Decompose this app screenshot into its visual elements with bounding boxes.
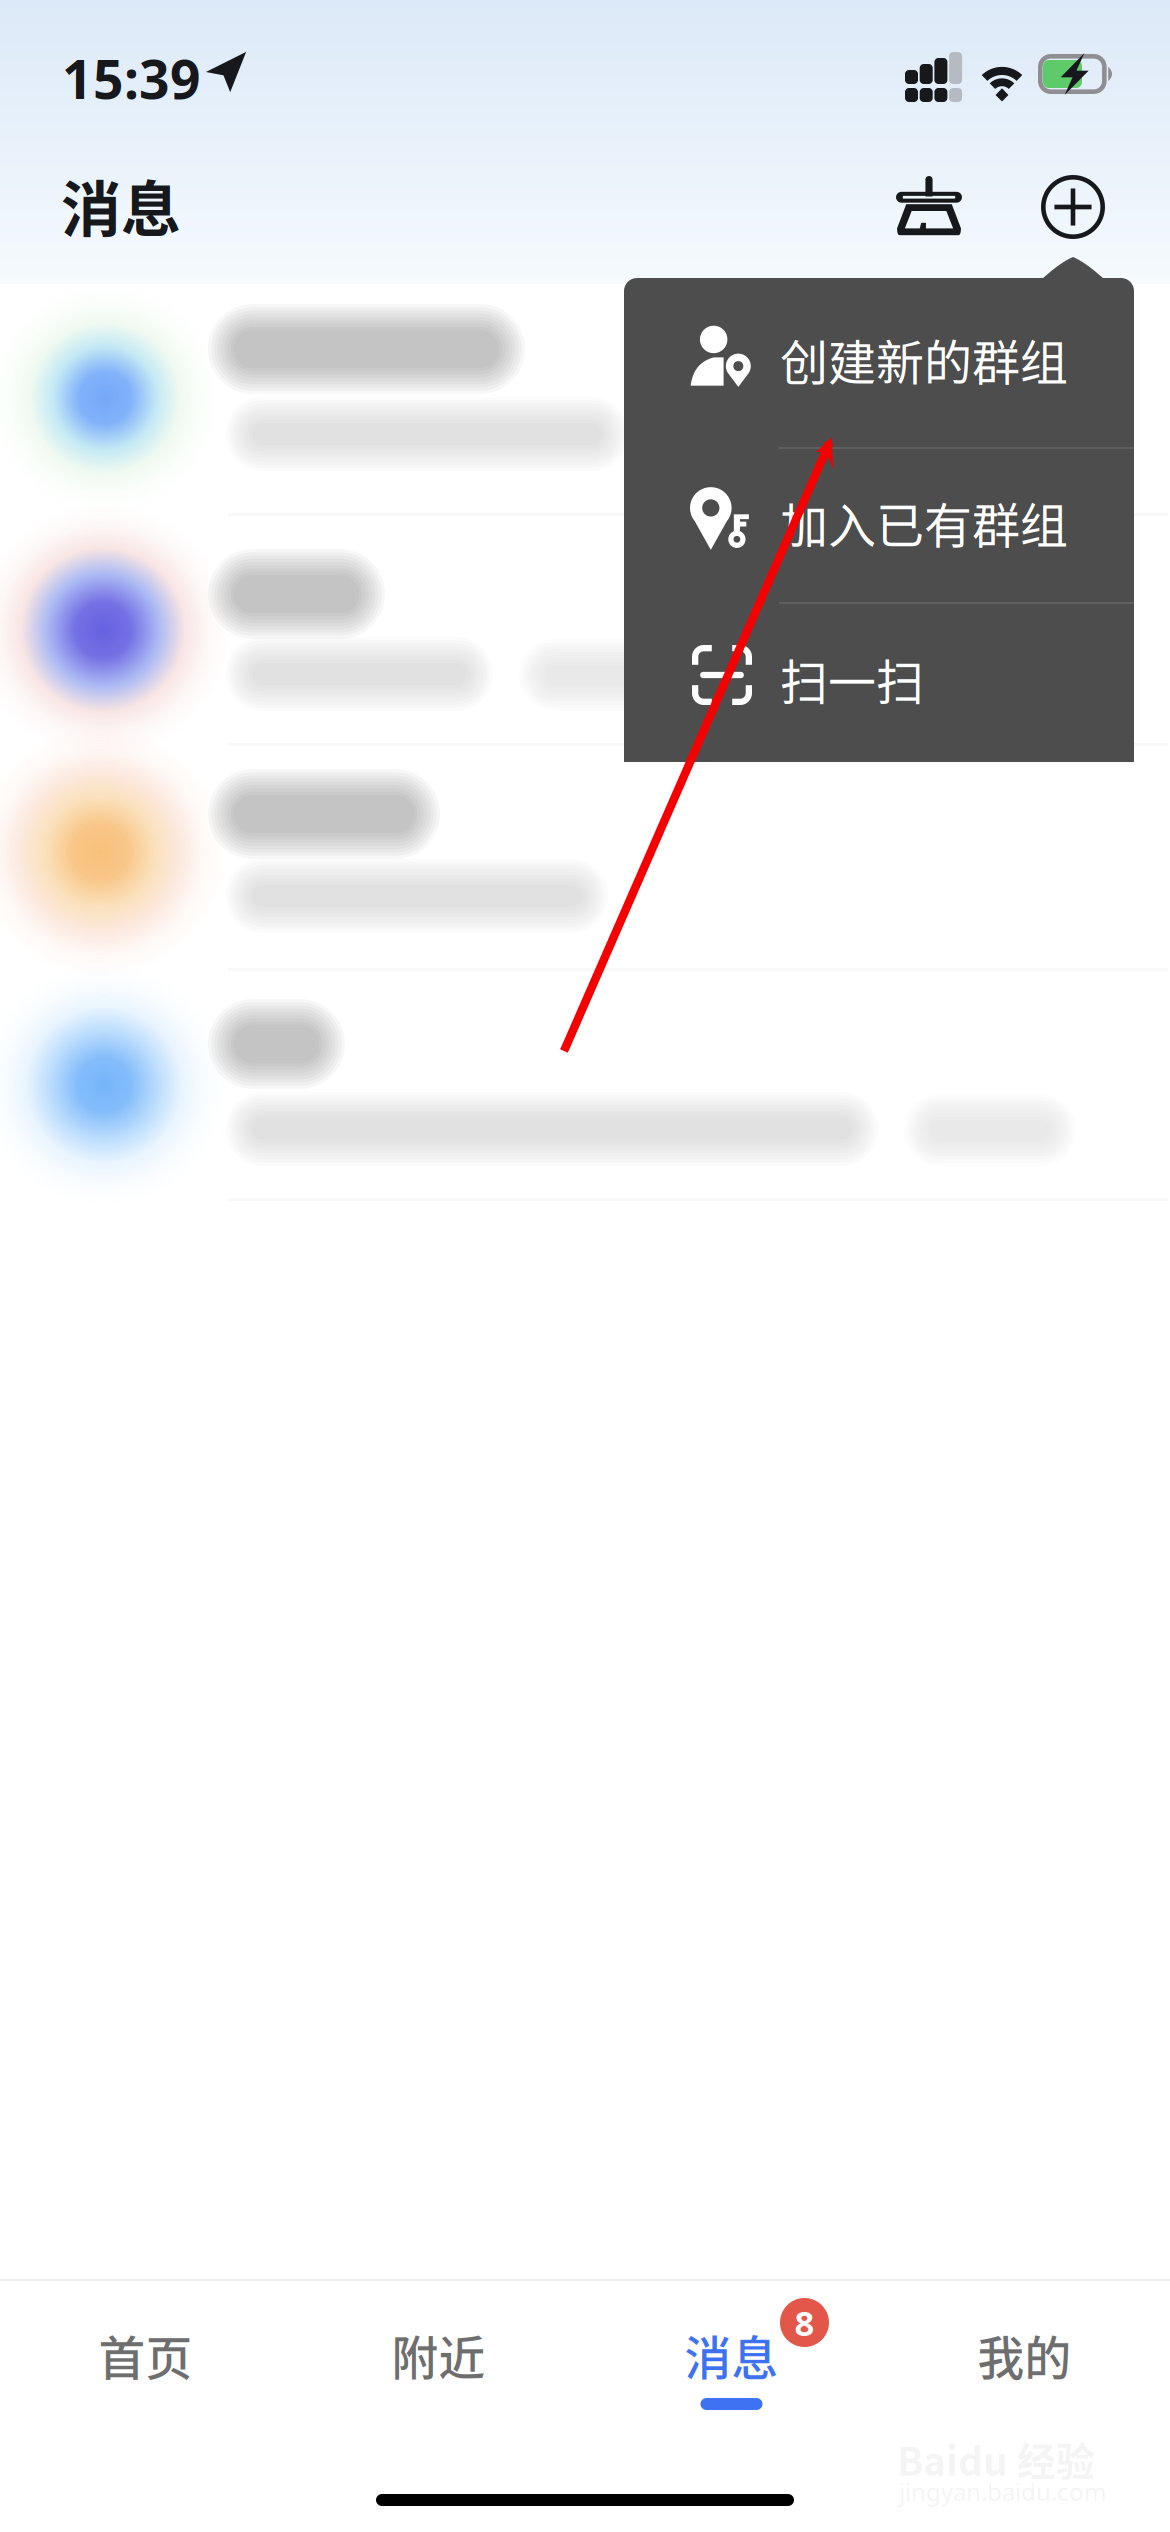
staticText: jingyan.baidu.com [899, 2475, 1106, 2508]
staticText: 首页 [98, 2321, 192, 2389]
button[interactable]: 扫一扫 [624, 604, 1134, 762]
staticText: 消息 [61, 162, 181, 249]
button[interactable]: 创建新的群组 [624, 278, 1134, 449]
staticText: 扫一扫 [780, 644, 924, 713]
button[interactable]: 清理消息 [883, 161, 975, 253]
button[interactable]: 我的 [879, 2291, 1170, 2451]
staticText: 8 [794, 2299, 814, 2346]
button[interactable]: 附近 [293, 2291, 584, 2451]
button[interactable]: 新建 [1027, 161, 1119, 253]
staticText: Baidu 经验 [897, 2431, 1095, 2487]
staticText: 15:39 [62, 42, 201, 115]
staticText: 附近 [391, 2321, 485, 2389]
button[interactable]: 加入已有群组 [624, 449, 1134, 604]
button[interactable]: 首页 [0, 2291, 291, 2451]
staticText: 创建新的群组 [780, 324, 1068, 394]
staticText: 我的 [977, 2321, 1071, 2389]
button[interactable]: 消息 [586, 2291, 877, 2451]
staticText: 加入已有群组 [780, 487, 1068, 557]
staticText: 消息 [684, 2321, 778, 2389]
